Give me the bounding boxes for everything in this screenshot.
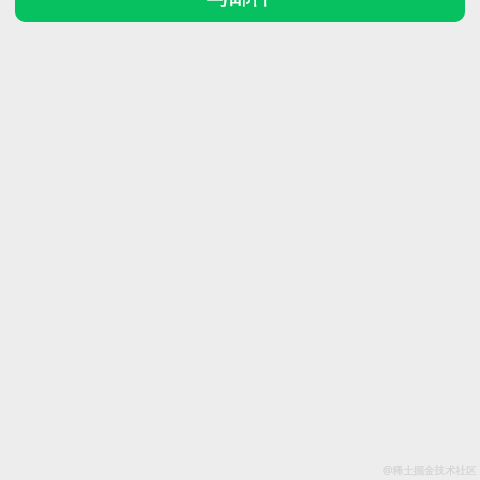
button[interactable]: 与邮件 [15, 0, 465, 22]
staticText: 与邮件 [207, 0, 273, 11]
staticText: @稀土掘金技术社区 [383, 463, 477, 477]
